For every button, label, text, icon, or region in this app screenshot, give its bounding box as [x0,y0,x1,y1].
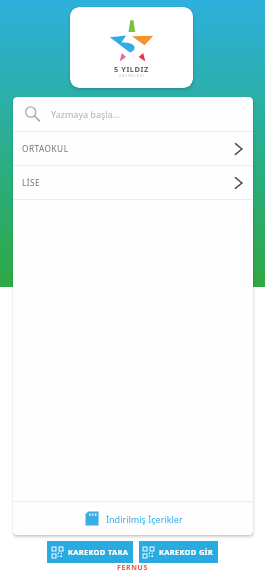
button[interactable]: LİSE [13,166,253,199]
other: Open [231,175,247,191]
staticText: Yazmaya başla... [51,108,120,120]
other: Open [231,141,247,157]
button[interactable]: ORTAOKUL [13,132,253,165]
staticText: FERNUS [117,563,148,573]
button[interactable]: KAREKOD TARA [47,541,133,563]
other: Search [24,106,40,122]
button[interactable]: KAREKOD GİR [139,541,218,563]
button[interactable]: Search [13,97,253,131]
staticText: 5 YILDIZ [114,64,149,74]
staticText: KAREKOD TARA [68,547,129,557]
staticText: İndirilmiş İçerikler [106,513,183,525]
staticText: Y A Y I N L A R I [119,73,145,78]
button[interactable]: İndirilmiş İçerikler [13,502,253,535]
staticText: LİSE [22,177,41,188]
staticText: KAREKOD GİR [159,547,214,557]
staticText: ORTAOKUL [22,143,69,154]
